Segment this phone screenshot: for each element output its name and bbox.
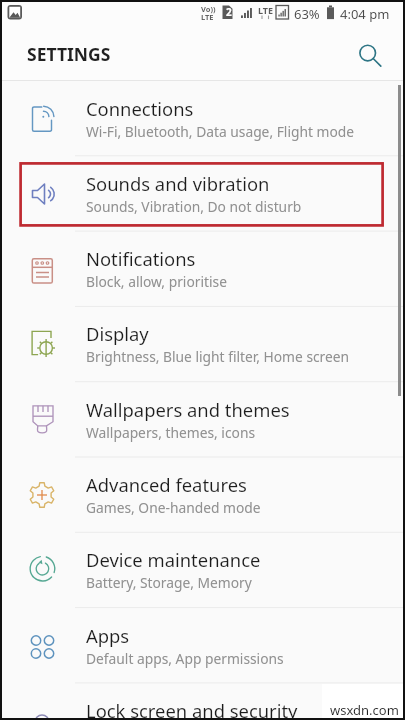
staticText: LTE: [258, 4, 274, 16]
staticText: wsxdn.com: [330, 701, 399, 719]
button[interactable]: Connections: [0, 81, 405, 156]
staticText: LTE: [201, 12, 214, 22]
staticText: Wallpapers, themes, icons: [86, 423, 256, 442]
staticText: Wallpapers and themes: [86, 397, 290, 422]
button[interactable]: Notifications: [0, 231, 405, 306]
button[interactable]: Lock screen and security: [0, 683, 405, 720]
staticText: Sounds and vibration: [86, 171, 270, 196]
staticText: Games, One-handed mode: [86, 498, 261, 517]
staticText: Brightness, Blue light filter, Home scre…: [86, 347, 350, 366]
staticText: 63%: [294, 5, 320, 23]
staticText: Apps: [86, 623, 130, 648]
button[interactable]: Device maintenance: [0, 532, 405, 607]
staticText: Advanced features: [86, 472, 247, 497]
staticText: Sounds, Vibration, Do not disturb: [86, 197, 302, 216]
staticText: Lock screen and security: [86, 698, 298, 720]
staticText: Wi-Fi, Bluetooth, Data usage, Flight mod…: [86, 122, 355, 141]
staticText: Battery, Storage, Memory: [86, 573, 252, 592]
button[interactable]: Advanced features: [0, 457, 405, 532]
staticText: SETTINGS: [27, 42, 111, 66]
staticText: Default apps, App permissions: [86, 649, 284, 668]
button[interactable]: Apps: [0, 608, 405, 683]
button[interactable]: Display: [0, 306, 405, 381]
staticText: Notifications: [86, 246, 196, 271]
staticText: Block, allow, prioritise: [86, 272, 227, 291]
staticText: Connections: [86, 96, 194, 121]
staticText: 2: [226, 5, 232, 19]
button[interactable]: Wallpapers and themes: [0, 382, 405, 457]
button[interactable]: Search: [347, 34, 389, 76]
staticText: Display: [86, 321, 149, 346]
staticText: Device maintenance: [86, 547, 261, 572]
staticText: Vo)): [201, 4, 216, 14]
staticText: 4:04 pm: [340, 5, 390, 23]
button[interactable]: Sounds and vibration: [0, 156, 405, 231]
